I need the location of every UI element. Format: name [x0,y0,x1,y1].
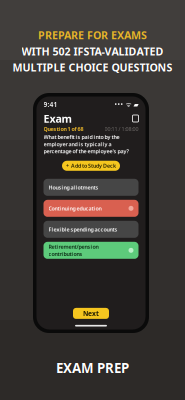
staticText: Flexible spending accounts [48,226,117,233]
staticText: MULTIPLE CHOICE QUESTIONS [12,60,172,74]
staticText: Housing allotments [48,184,98,191]
staticText: EXAM PREP [56,359,129,377]
button[interactable]: Next [73,308,109,319]
button[interactable]: + Add to Study Deck [62,161,120,171]
button[interactable]: Exit exam [132,115,138,122]
button[interactable]: Flexible spending accounts [43,221,138,238]
staticText: 9:41 [43,100,57,109]
staticText: What benefit is paid into by the employe… [43,133,128,155]
staticText: ••• ᯤ ▰ [114,100,138,109]
staticText: Retirement/pension contributions [48,243,98,257]
button[interactable]: Retirement/pension contributions [43,242,138,259]
staticText: Next [83,309,99,318]
staticText: Continuing education [48,205,101,212]
staticText: WITH 502 IFSTA-VALIDATED [21,44,163,58]
staticText: + Add to Study Deck [66,162,116,169]
staticText: 00:11 / 1:08:00 [104,125,138,133]
button[interactable]: Continuing education [43,200,138,217]
button[interactable]: Housing allotments [43,179,138,196]
staticText: Exam [43,111,71,126]
staticText: Question 1 of 68 [43,125,83,133]
staticText: PREPARE FOR EXAMS [38,28,147,42]
